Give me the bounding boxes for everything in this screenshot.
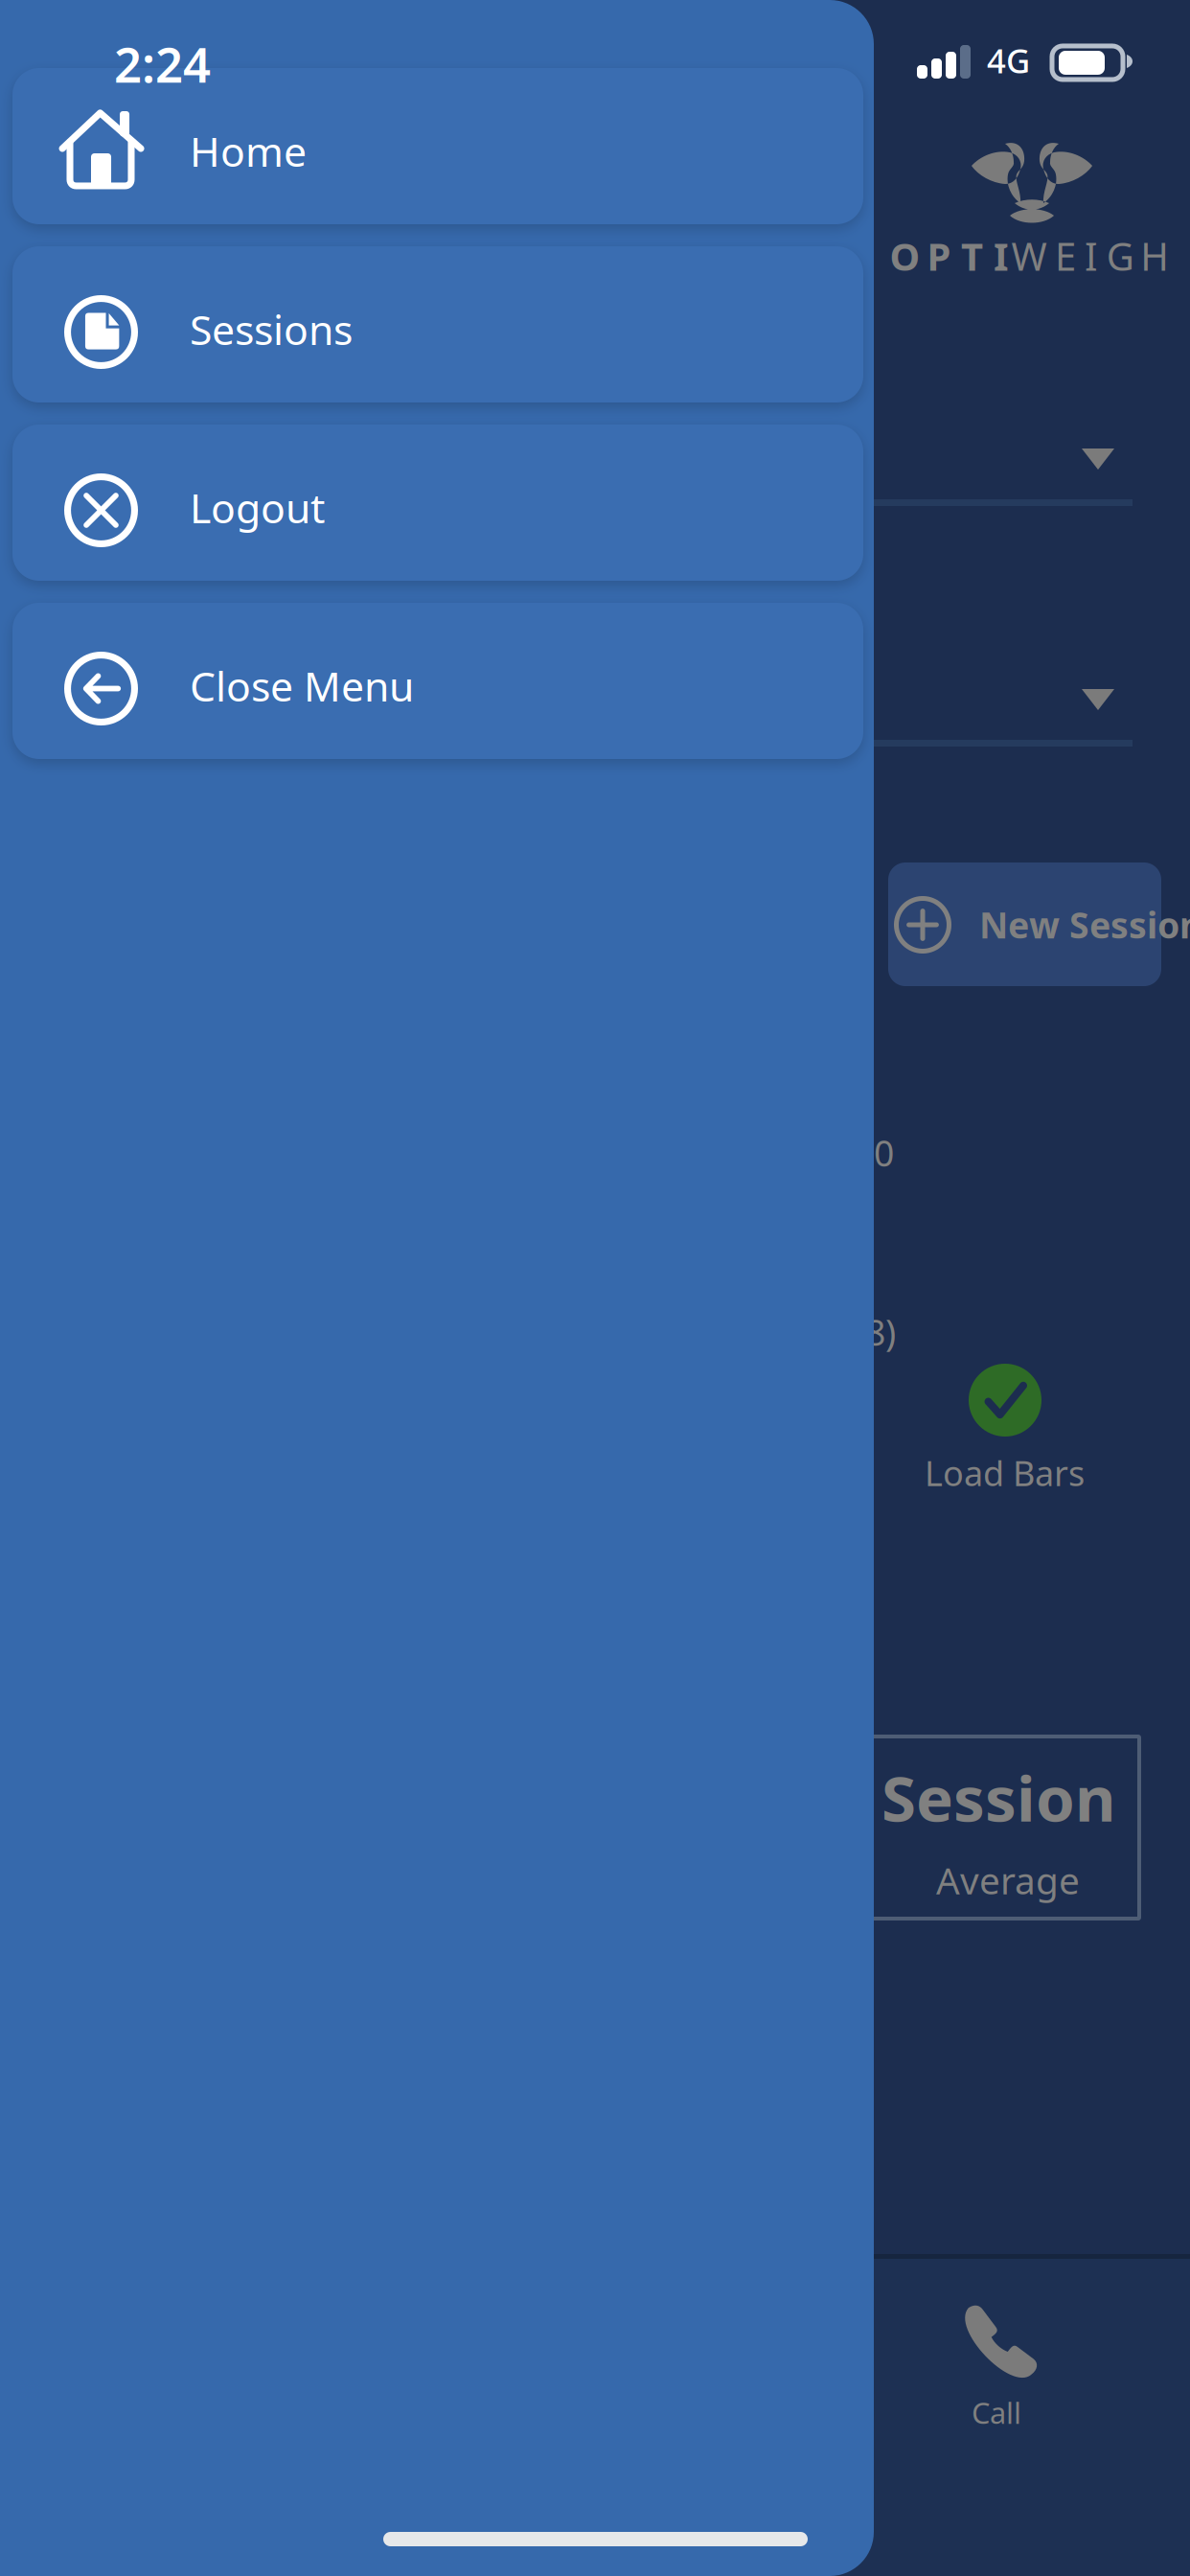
staticText: 8) xyxy=(865,1308,896,1356)
staticText: O xyxy=(890,230,920,281)
staticText: Average xyxy=(936,1855,1080,1904)
staticText: 0 xyxy=(874,1129,894,1176)
staticText: Close Menu xyxy=(190,658,414,713)
staticText: 2:24 xyxy=(114,32,211,96)
button[interactable]: New Session xyxy=(888,862,1161,986)
staticText: H xyxy=(1140,230,1169,281)
staticText: Home xyxy=(190,124,307,178)
staticText: Logout xyxy=(190,480,325,534)
button[interactable]: Close Menu xyxy=(12,603,863,759)
button[interactable]: Call xyxy=(891,2281,1102,2472)
staticText: Session xyxy=(881,1756,1115,1839)
staticText: W xyxy=(1011,230,1047,281)
staticText: I xyxy=(993,230,1009,281)
button[interactable]: Logout xyxy=(12,425,863,581)
staticText: T xyxy=(961,230,983,281)
staticText: Sessions xyxy=(190,302,353,356)
button[interactable]: Home xyxy=(12,68,863,224)
staticText: New Session xyxy=(979,901,1190,948)
button[interactable]: Sessions xyxy=(12,246,863,402)
staticText: 4G xyxy=(987,38,1030,82)
staticText: Load Bars xyxy=(925,1450,1085,1496)
staticText: G xyxy=(1106,230,1134,281)
staticText: E xyxy=(1055,230,1076,281)
staticText: I xyxy=(1085,230,1098,281)
staticText: Call xyxy=(972,2393,1021,2432)
staticText: P xyxy=(927,230,951,281)
